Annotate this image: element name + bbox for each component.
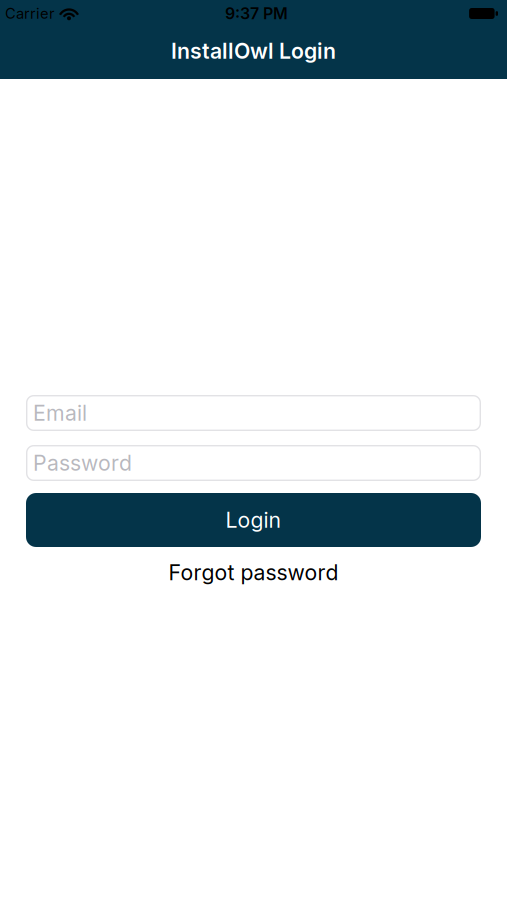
button[interactable]: Forgot password bbox=[168, 560, 338, 585]
staticText: Password bbox=[33, 450, 132, 476]
staticText: 9:37 PM bbox=[225, 4, 288, 23]
textField[interactable]: Email bbox=[26, 395, 481, 431]
staticText: Email bbox=[33, 400, 87, 426]
staticText: Carrier bbox=[5, 5, 55, 22]
staticText: InstallOwl Login bbox=[171, 38, 336, 64]
textField[interactable]: Password bbox=[26, 445, 481, 481]
button[interactable]: Login bbox=[26, 493, 481, 547]
staticText: Login bbox=[225, 507, 281, 533]
staticText: Forgot password bbox=[168, 560, 338, 585]
